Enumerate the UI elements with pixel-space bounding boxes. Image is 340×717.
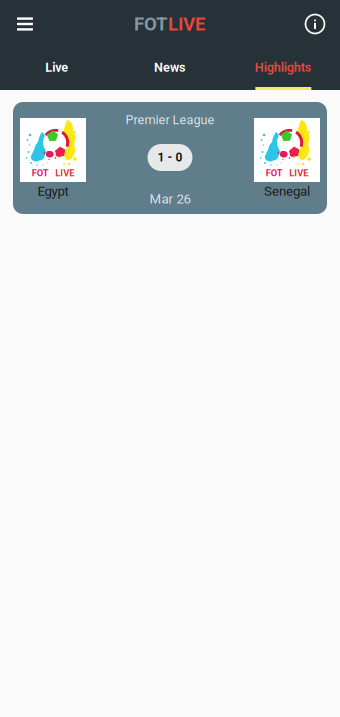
staticText: FOT (266, 167, 283, 178)
staticText: LIVE (289, 167, 308, 178)
staticText: Premier League (125, 113, 214, 127)
staticText: LIVE (168, 13, 206, 35)
staticText: News (154, 60, 186, 75)
staticText: Highlights (255, 60, 312, 75)
button[interactable]: Info (296, 5, 334, 43)
button[interactable]: Live (0, 48, 113, 90)
staticText: FOT (32, 167, 49, 178)
staticText: 1 - 0 (157, 150, 182, 165)
staticText: Egypt (37, 183, 68, 199)
button[interactable]: Highlights (227, 48, 340, 90)
staticText: Mar 26 (149, 191, 190, 207)
staticText: Senegal (264, 183, 310, 199)
staticText: FOT (134, 13, 168, 35)
staticText: LIVE (55, 167, 74, 178)
button[interactable]: News (113, 48, 227, 90)
button[interactable]: Menu (6, 5, 44, 43)
staticText: Live (45, 60, 68, 75)
